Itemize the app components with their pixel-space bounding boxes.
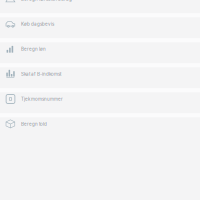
staticText: Skat af B-indkomst bbox=[21, 71, 61, 77]
button[interactable]: Beregn told bbox=[0, 117, 200, 138]
button[interactable]: Tjek momsnummer bbox=[0, 92, 200, 113]
button[interactable]: Køb dagsbevis bbox=[0, 17, 200, 38]
staticText: Beregn kørselsfradrag bbox=[21, 0, 72, 2]
staticText: Beregn løn bbox=[21, 46, 46, 52]
staticText: Beregn told bbox=[21, 121, 47, 127]
button[interactable]: Beregn løn bbox=[0, 42, 200, 63]
staticText: Tjek momsnummer bbox=[21, 96, 63, 102]
staticText: Køb dagsbevis bbox=[21, 21, 54, 27]
button[interactable]: Skat af B-indkomst bbox=[0, 67, 200, 88]
button[interactable]: Beregn kørselsfradrag bbox=[0, 0, 200, 13]
